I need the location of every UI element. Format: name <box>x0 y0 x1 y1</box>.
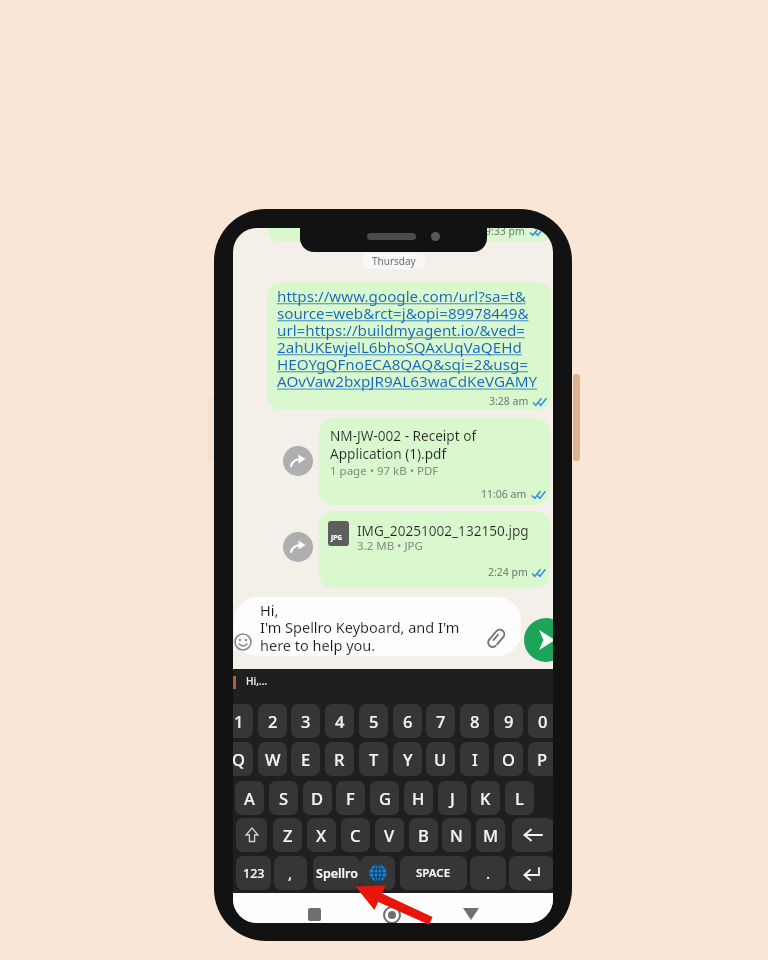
button[interactable] <box>234 597 521 656</box>
button[interactable]: D <box>303 781 332 815</box>
staticText: B <box>418 824 429 846</box>
button[interactable]: 8 <box>460 704 489 738</box>
button[interactable]: 2 <box>258 704 287 738</box>
button[interactable] <box>509 856 553 890</box>
button[interactable]: 0 <box>528 704 553 738</box>
staticText: 11:06 am <box>481 487 527 501</box>
button[interactable]: F <box>336 781 365 815</box>
button[interactable]: C <box>341 818 370 852</box>
button[interactable] <box>319 511 550 588</box>
button[interactable]: M <box>476 818 505 852</box>
staticText: 0 <box>538 710 548 732</box>
button[interactable]: V <box>375 818 404 852</box>
staticText: Y <box>403 748 413 770</box>
button[interactable]: U <box>426 742 455 776</box>
button[interactable] <box>463 908 479 921</box>
button[interactable]: A <box>235 781 264 815</box>
staticText: Application (1).pdf <box>330 444 447 463</box>
button[interactable]: I <box>460 742 489 776</box>
staticText: N <box>450 824 463 846</box>
button[interactable]: N <box>442 818 471 852</box>
staticText: Z <box>283 824 293 846</box>
button[interactable]: SPACE <box>400 856 467 890</box>
button[interactable] <box>283 532 313 562</box>
staticText: Q <box>233 748 245 770</box>
button[interactable]: 9 <box>494 704 523 738</box>
staticText: G <box>379 787 391 809</box>
button[interactable]: H <box>404 781 433 815</box>
staticText: V <box>384 824 395 846</box>
staticText: I <box>472 748 478 770</box>
button[interactable]: O <box>494 742 523 776</box>
button[interactable]: 3 <box>291 704 320 738</box>
staticText: SPACE <box>416 865 451 881</box>
button[interactable]: G <box>370 781 399 815</box>
staticText: R <box>334 748 345 770</box>
staticText: J <box>450 787 455 809</box>
staticText: NM-JW-002 - Receipt of <box>330 426 477 445</box>
button[interactable]: R <box>325 742 354 776</box>
button[interactable] <box>236 818 267 852</box>
staticText: 8 <box>470 710 480 732</box>
staticText: JPG <box>331 533 342 542</box>
staticText: C <box>350 824 361 846</box>
button[interactable] <box>267 282 551 410</box>
staticText: U <box>434 748 447 770</box>
staticText: 2:24 pm <box>488 565 528 579</box>
staticText: 6 <box>403 710 413 732</box>
staticText: 4 <box>335 710 345 732</box>
staticText: 3:28 am <box>489 394 529 408</box>
button[interactable]: T <box>359 742 388 776</box>
button[interactable]: X <box>307 818 336 852</box>
button[interactable]: W <box>258 742 287 776</box>
staticText: Hi,... <box>246 674 268 688</box>
staticText: F <box>346 787 355 809</box>
staticText: T <box>369 748 379 770</box>
button[interactable]: 5 <box>359 704 388 738</box>
button[interactable]: B <box>409 818 438 852</box>
button[interactable]: Z <box>273 818 302 852</box>
staticText: W <box>265 748 281 770</box>
staticText: 3 <box>301 710 311 732</box>
staticText: 7 <box>436 710 446 732</box>
button[interactable]: L <box>505 781 534 815</box>
button[interactable]: J <box>438 781 467 815</box>
button[interactable] <box>308 908 321 921</box>
button[interactable]: Spellro <box>313 856 360 890</box>
button[interactable] <box>512 818 553 852</box>
button[interactable]: S <box>269 781 298 815</box>
button[interactable]: Y <box>393 742 422 776</box>
staticText: Hi, I'm Spellro Keyboard, and I'm here t… <box>260 600 460 655</box>
button[interactable]: 6 <box>393 704 422 738</box>
button[interactable]: 4 <box>325 704 354 738</box>
button[interactable]: P <box>528 742 553 776</box>
button[interactable]: E <box>291 742 320 776</box>
button[interactable] <box>524 618 553 662</box>
staticText: Spellro <box>316 865 358 882</box>
button[interactable]: 7 <box>426 704 455 738</box>
button[interactable] <box>360 856 395 890</box>
staticText: D <box>311 787 324 809</box>
staticText: 123 <box>243 865 265 882</box>
staticText: E <box>301 748 311 770</box>
button[interactable] <box>383 906 401 923</box>
staticText: O <box>502 748 515 770</box>
staticText: M <box>483 824 499 846</box>
button[interactable]: K <box>471 781 500 815</box>
button[interactable]: 123 <box>236 856 271 890</box>
button[interactable]: , <box>274 856 307 890</box>
staticText: 9:33 pm <box>485 228 525 238</box>
staticText: Thursday <box>372 254 416 268</box>
staticText: 3.2 MB • JPG <box>357 538 423 554</box>
button[interactable] <box>283 446 313 476</box>
staticText: . <box>486 863 491 883</box>
staticText: IMG_20251002_132150.jpg <box>357 521 529 540</box>
button[interactable]: Q <box>233 742 253 776</box>
button[interactable]: . <box>470 856 506 890</box>
button[interactable] <box>319 418 550 505</box>
staticText: P <box>537 748 548 770</box>
staticText: 1 <box>234 710 244 732</box>
staticText: L <box>515 787 524 809</box>
staticText: 2 <box>268 710 278 732</box>
button[interactable]: 1 <box>233 704 253 738</box>
